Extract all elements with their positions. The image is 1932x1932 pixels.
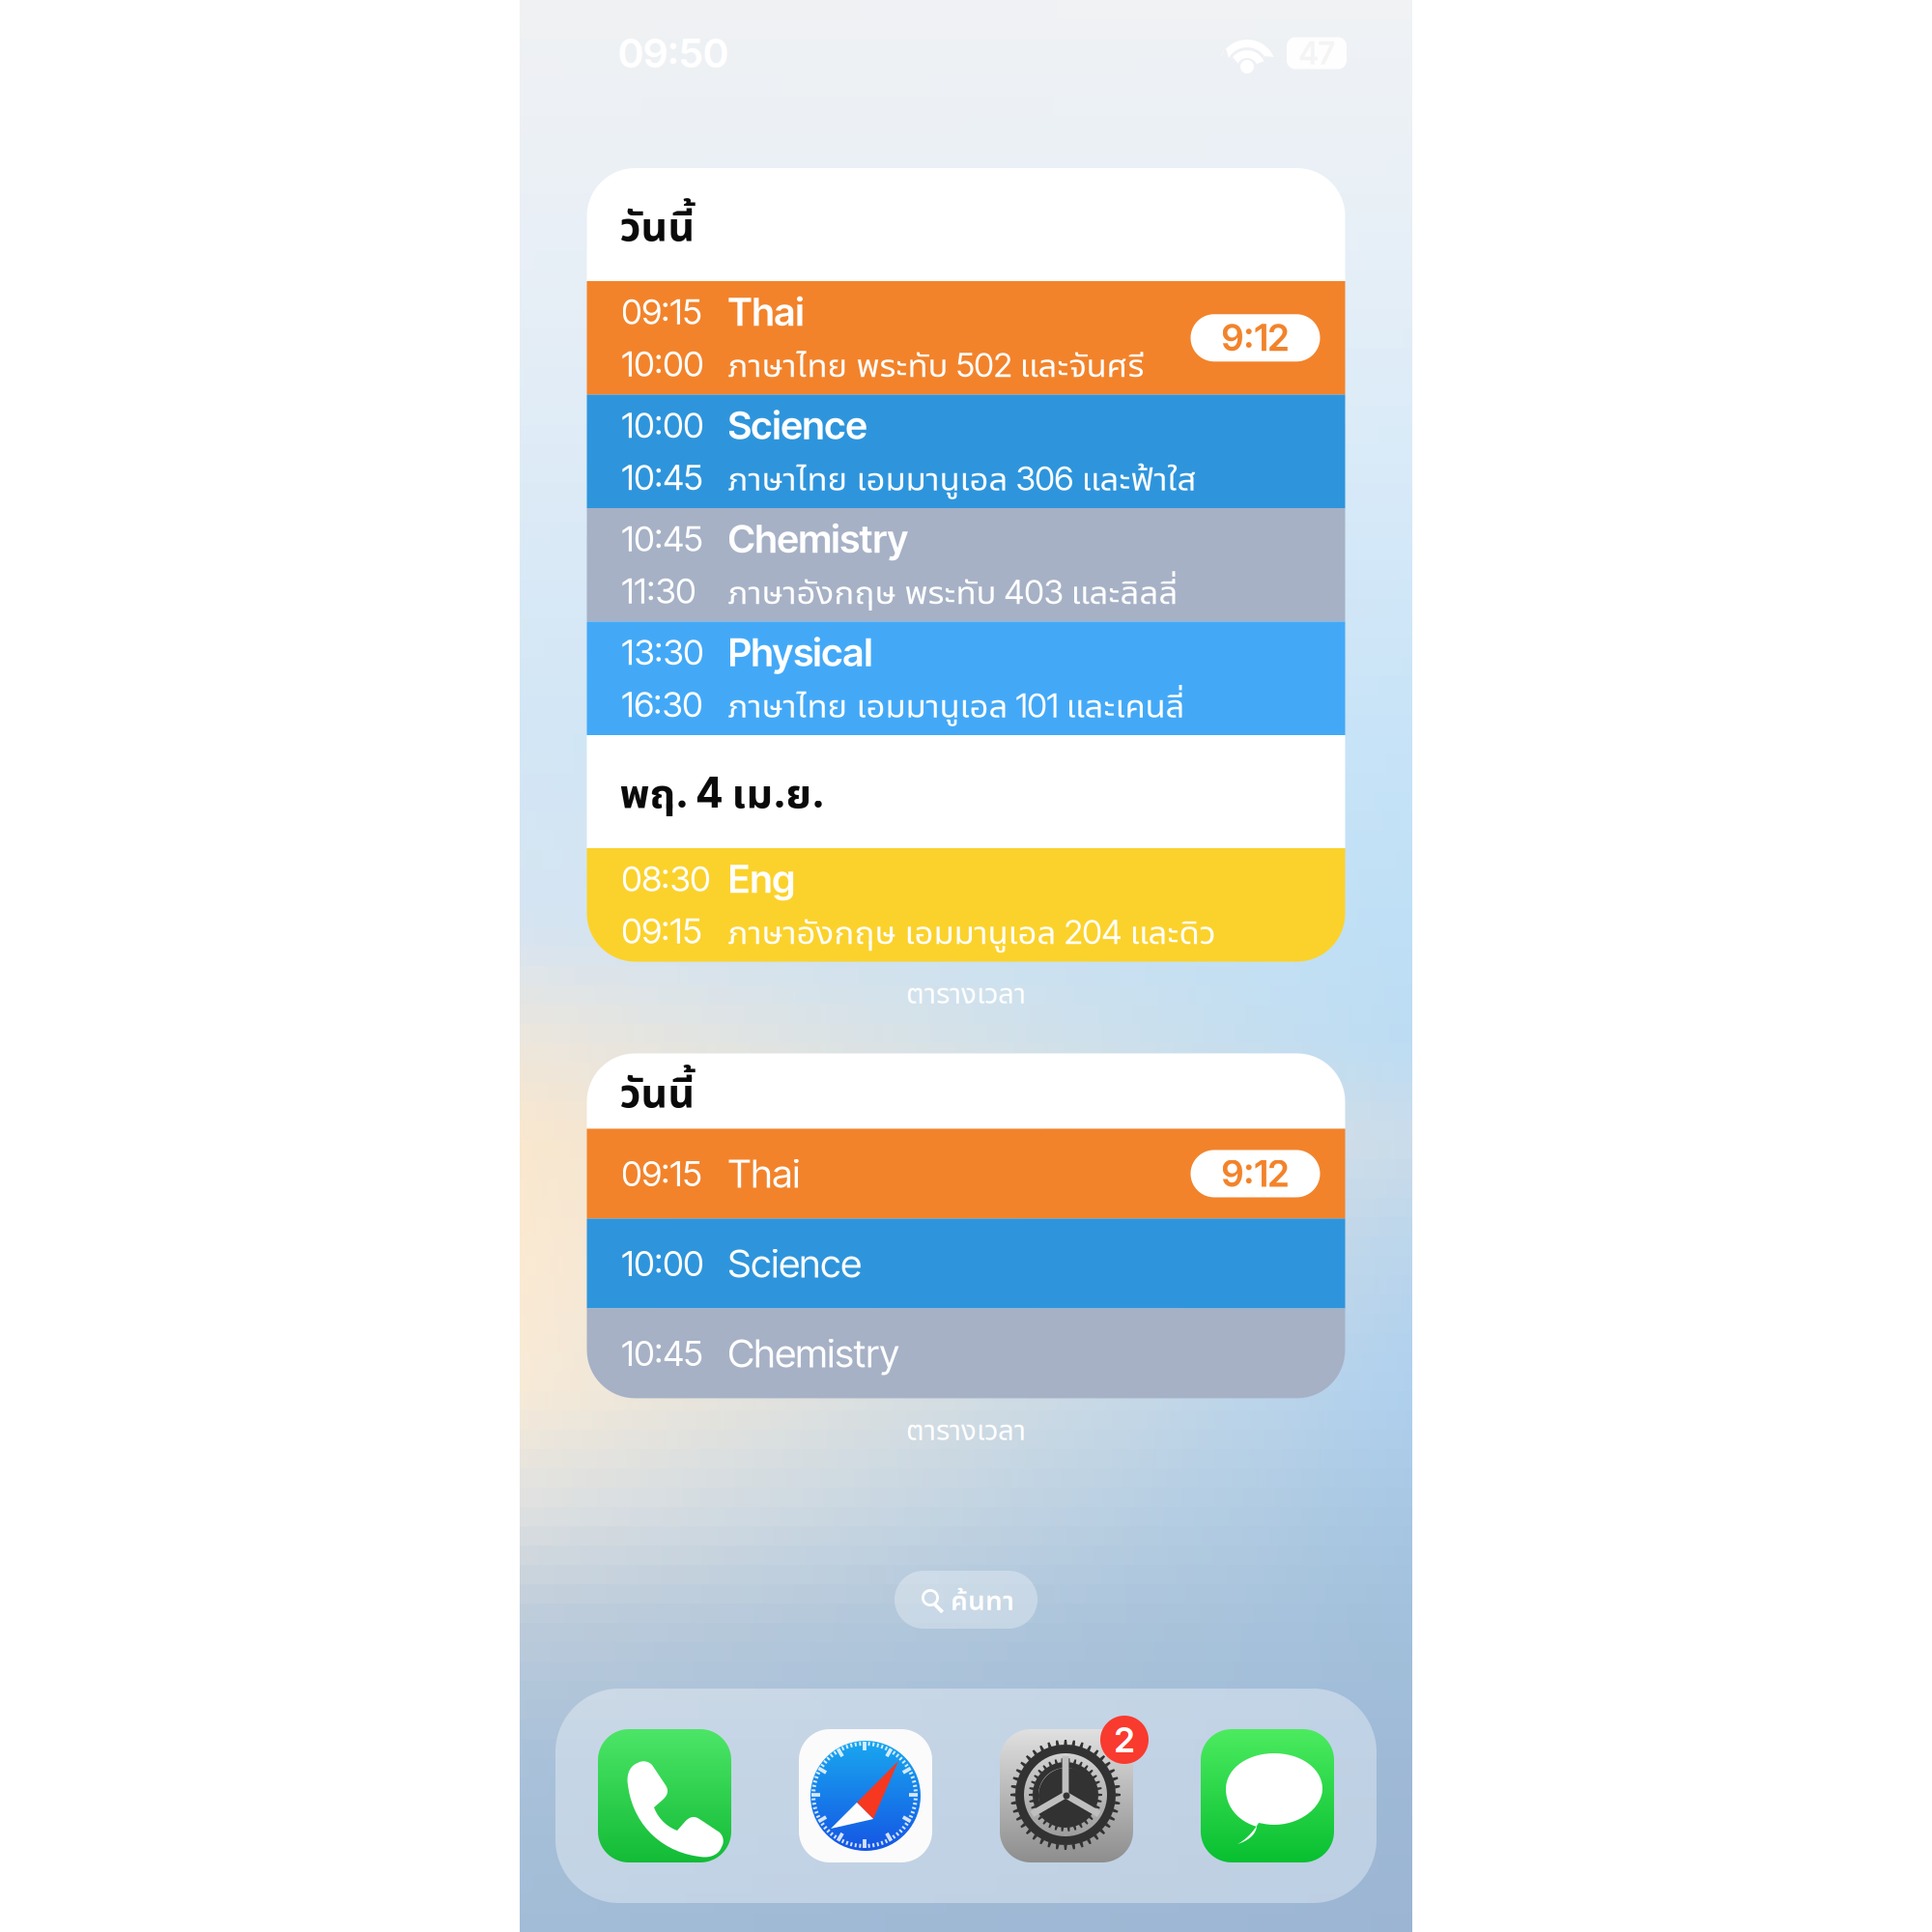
- staticText: 47: [1299, 34, 1335, 72]
- staticText: 10:00: [622, 1242, 704, 1285]
- staticText: Science: [728, 402, 867, 449]
- button[interactable]: Safari: [799, 1729, 932, 1862]
- staticText: 09:15: [622, 910, 702, 952]
- button[interactable]: วันนี้: [587, 168, 1345, 962]
- staticText: 13:30: [622, 631, 704, 673]
- staticText: Physical: [728, 629, 873, 676]
- staticText: ภาษาอังกฤษ เอมมานูเอล 204 และดิว: [728, 908, 1216, 954]
- staticText: 10:45: [622, 1332, 703, 1374]
- staticText: Chemistry: [728, 515, 909, 562]
- staticText: 9:12: [1222, 1152, 1289, 1196]
- staticText: 10:45: [622, 518, 703, 560]
- staticText: 11:30: [622, 570, 696, 612]
- staticText: 08:30: [622, 858, 710, 900]
- staticText: 09:15: [622, 291, 702, 333]
- staticText: วันนี้: [620, 197, 695, 253]
- staticText: ภาษาไทย เอมมานูเอล 306 และฟ้าใส: [728, 455, 1196, 500]
- button[interactable]: Settings: [1000, 1729, 1133, 1862]
- staticText: 10:45: [622, 456, 703, 499]
- staticText: Science: [728, 1240, 861, 1287]
- staticText: พฤ. 4 เม.ย.: [620, 764, 824, 820]
- button[interactable]: Messages: [1201, 1729, 1334, 1862]
- staticText: วันนี้: [620, 1063, 695, 1119]
- staticText: ภาษาอังกฤษ พระทับ 403 และลิลลี่: [728, 568, 1178, 614]
- staticText: 10:00: [622, 404, 704, 446]
- staticText: ตารางเวลา: [906, 973, 1026, 1012]
- staticText: ภาษาไทย พระทับ 502 และจันศรี: [728, 341, 1144, 387]
- staticText: ภาษาไทย เอมมานูเอล 101 และเคนลี่: [728, 682, 1185, 727]
- staticText: 9:12: [1222, 316, 1289, 360]
- staticText: ค้นทา: [951, 1581, 1014, 1618]
- staticText: 2: [1114, 1719, 1135, 1761]
- staticText: 16:30: [622, 683, 703, 726]
- button[interactable]: วันนี้: [587, 1053, 1345, 1398]
- button[interactable]: Phone: [598, 1729, 731, 1862]
- staticText: 10:00: [622, 343, 704, 385]
- staticText: Thai: [728, 1150, 800, 1197]
- staticText: Thai: [728, 288, 804, 335]
- staticText: 09:50: [618, 29, 728, 77]
- staticText: 09:15: [622, 1153, 702, 1195]
- staticText: ตารางเวลา: [906, 1410, 1026, 1449]
- staticText: Chemistry: [728, 1330, 899, 1377]
- button[interactable]: ค้นทา: [895, 1571, 1037, 1629]
- staticText: Eng: [728, 855, 795, 902]
